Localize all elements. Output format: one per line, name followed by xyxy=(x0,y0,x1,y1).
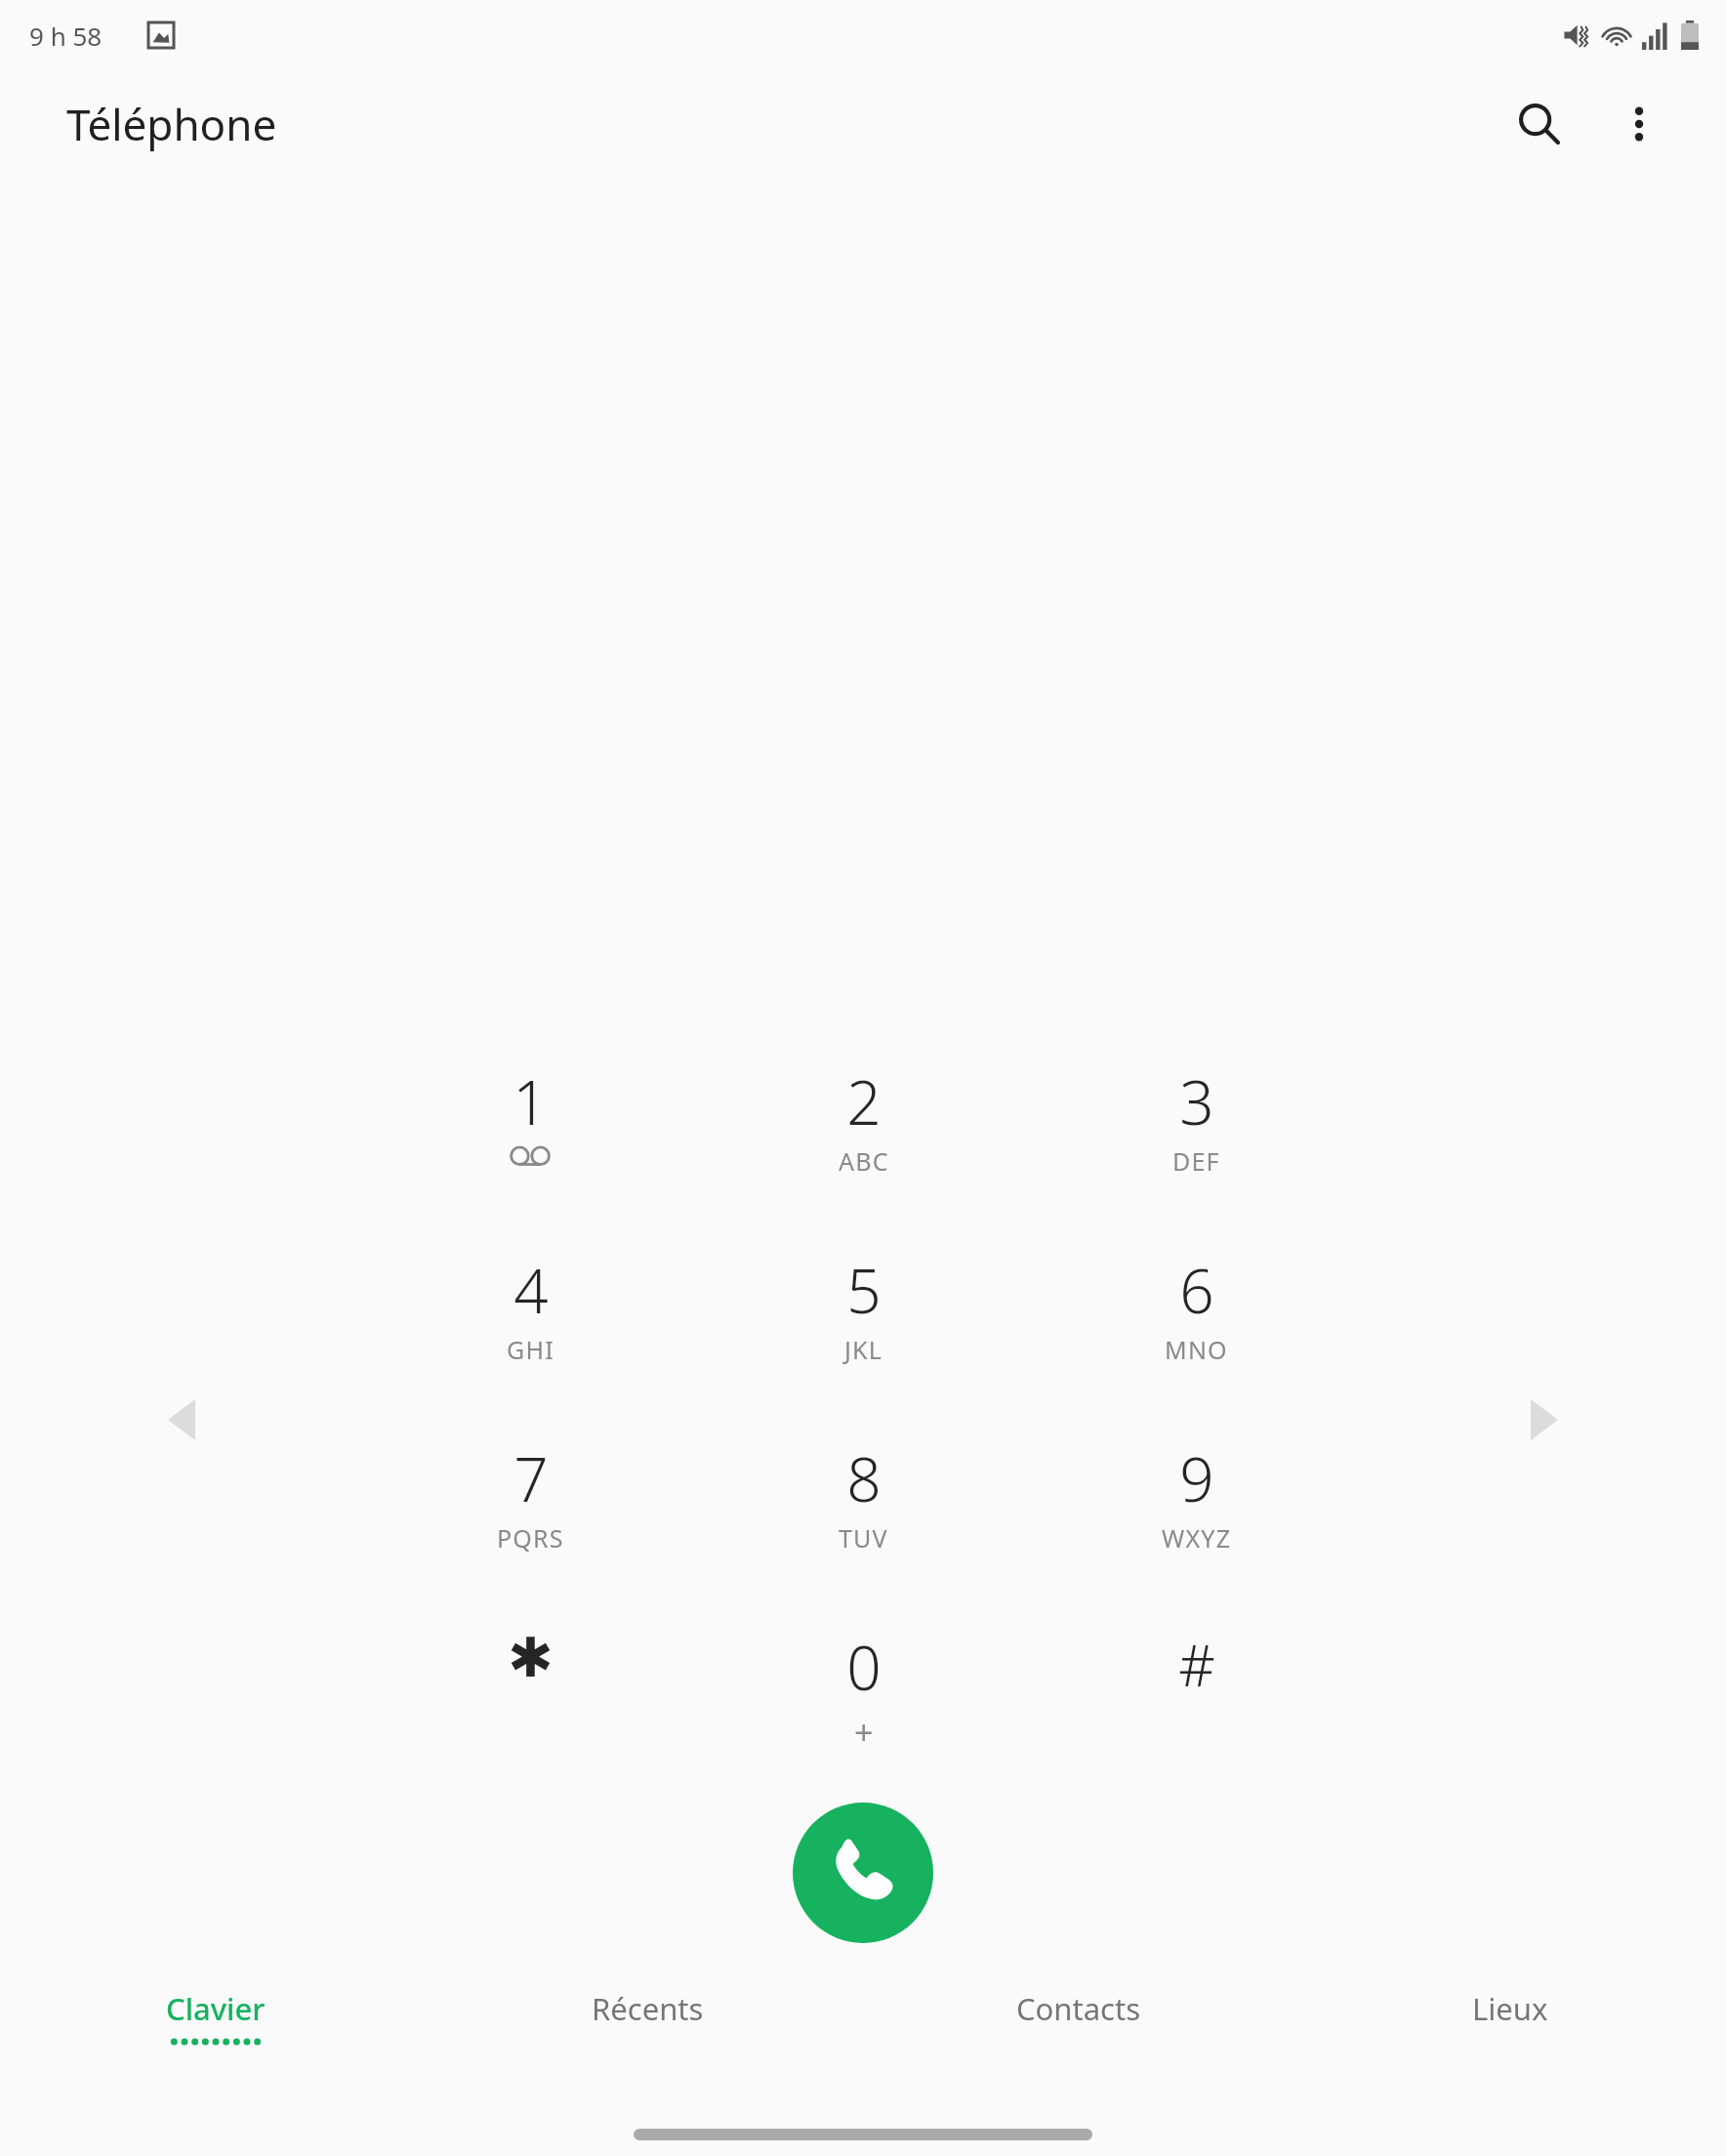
button[interactable]: Next page xyxy=(1509,1385,1580,1455)
staticText: 8 xyxy=(846,1437,882,1519)
button[interactable]: # xyxy=(1030,1626,1363,1802)
button[interactable]: Contacts xyxy=(863,1988,1294,2097)
staticText: MNO xyxy=(1165,1333,1228,1366)
staticText: + xyxy=(854,1710,874,1755)
button[interactable]: 3 xyxy=(1030,1060,1363,1249)
staticText: 5 xyxy=(846,1249,882,1331)
staticText: Contacts xyxy=(1016,1988,1141,2029)
staticText: WXYZ xyxy=(1162,1521,1232,1555)
staticText: ✱ xyxy=(508,1626,554,1689)
staticText: DEF xyxy=(1172,1144,1220,1178)
button[interactable]: 7 xyxy=(363,1437,697,1626)
button[interactable]: 6 xyxy=(1030,1249,1363,1437)
staticText: 0 xyxy=(846,1626,882,1708)
button[interactable]: 8 xyxy=(697,1437,1030,1626)
button[interactable]: Search xyxy=(1498,82,1582,166)
staticText: ABC xyxy=(839,1144,889,1178)
staticText: 1 xyxy=(513,1060,548,1142)
staticText: PQRS xyxy=(497,1521,564,1555)
staticText: 9 xyxy=(1179,1437,1214,1519)
staticText: 4 xyxy=(514,1249,549,1331)
staticText: Clavier xyxy=(166,1988,266,2029)
staticText: # xyxy=(1178,1626,1215,1703)
staticText: 2 xyxy=(846,1060,882,1142)
staticText: Téléphone xyxy=(66,95,277,153)
button[interactable]: Previous page xyxy=(146,1385,217,1455)
button[interactable]: ✱ xyxy=(363,1626,697,1802)
staticText: JKL xyxy=(844,1333,884,1366)
button[interactable]: Clavier xyxy=(0,1988,431,2097)
staticText: GHI xyxy=(507,1333,555,1366)
staticText: 3 xyxy=(1179,1060,1214,1142)
button[interactable]: Lieux xyxy=(1294,1988,1726,2097)
staticText: 7 xyxy=(514,1437,549,1519)
staticText: TUV xyxy=(839,1521,888,1555)
button[interactable]: 0 xyxy=(697,1626,1030,1802)
button[interactable]: Récents xyxy=(431,1988,863,2097)
button[interactable]: 5 xyxy=(697,1249,1030,1437)
staticText: Récents xyxy=(592,1988,704,2029)
button[interactable]: 1 xyxy=(363,1060,697,1249)
button[interactable]: 9 xyxy=(1030,1437,1363,1626)
button[interactable]: Call xyxy=(793,1803,933,1943)
button[interactable]: 4 xyxy=(363,1249,697,1437)
staticText: Lieux xyxy=(1472,1988,1548,2029)
button[interactable]: 2 xyxy=(697,1060,1030,1249)
button[interactable]: More options xyxy=(1597,82,1681,166)
staticText: 6 xyxy=(1179,1249,1214,1331)
staticText: 9 h 58 xyxy=(29,19,103,53)
